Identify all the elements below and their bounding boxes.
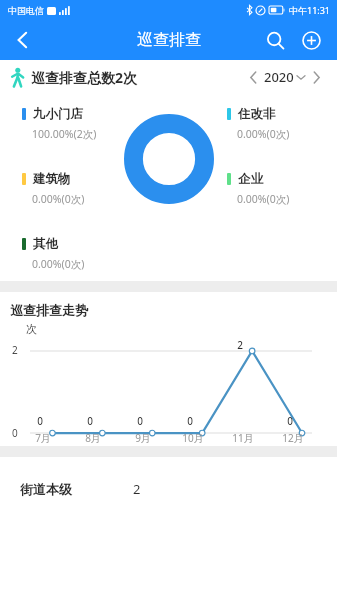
staticText: 巡查排查	[137, 30, 201, 50]
staticText: 0	[30, 414, 50, 428]
staticText: 住改非	[238, 106, 276, 122]
staticText: 巡查排查总数2次	[31, 68, 138, 87]
staticText: 8月	[80, 431, 106, 445]
staticText: 9月	[130, 431, 156, 445]
staticText: 0.00%(0次)	[237, 127, 290, 141]
staticText: 2020	[264, 68, 294, 86]
button[interactable]: 九小门店	[22, 106, 97, 141]
staticText: 0.00%(0次)	[32, 192, 85, 206]
staticText: 0	[130, 414, 150, 428]
button[interactable]: 建筑物	[22, 171, 85, 206]
staticText: 0	[180, 414, 200, 428]
staticText: 0.00%(0次)	[32, 257, 85, 271]
staticText: 0.00%(0次)	[237, 192, 290, 206]
staticText: 0	[12, 426, 18, 440]
staticText: 建筑物	[33, 171, 71, 187]
staticText: 次	[26, 322, 37, 336]
staticText: 11月	[230, 431, 256, 445]
staticText: 街道本级	[20, 481, 72, 497]
staticText: 中国电信	[8, 5, 44, 16]
staticText: 九小门店	[33, 106, 83, 122]
staticText: 其他	[33, 236, 58, 252]
button[interactable]: 2020	[264, 68, 305, 86]
button[interactable]: 其他	[22, 236, 85, 271]
button[interactable]: Previous year	[242, 66, 264, 88]
staticText: 10月	[180, 431, 206, 445]
button[interactable]: Search	[257, 22, 293, 58]
button[interactable]: 住改非	[227, 106, 290, 141]
staticText: 2	[230, 338, 250, 352]
staticText: 2	[133, 480, 141, 498]
staticText: 0	[80, 414, 100, 428]
button[interactable]: Next year	[305, 66, 327, 88]
staticText: 企业	[238, 171, 263, 187]
staticText: 中午11:31	[289, 4, 331, 16]
button[interactable]: Add	[293, 22, 329, 58]
staticText: 0	[280, 414, 300, 428]
button[interactable]: 街道本级	[8, 468, 167, 510]
staticText: 100.00%(2次)	[32, 127, 97, 141]
button[interactable]: 企业	[227, 171, 290, 206]
button[interactable]: Back	[0, 20, 44, 60]
staticText: 巡查排查走势	[10, 302, 88, 318]
staticText: 12月	[280, 431, 306, 445]
staticText: 2	[12, 343, 18, 357]
staticText: 7月	[30, 431, 56, 445]
